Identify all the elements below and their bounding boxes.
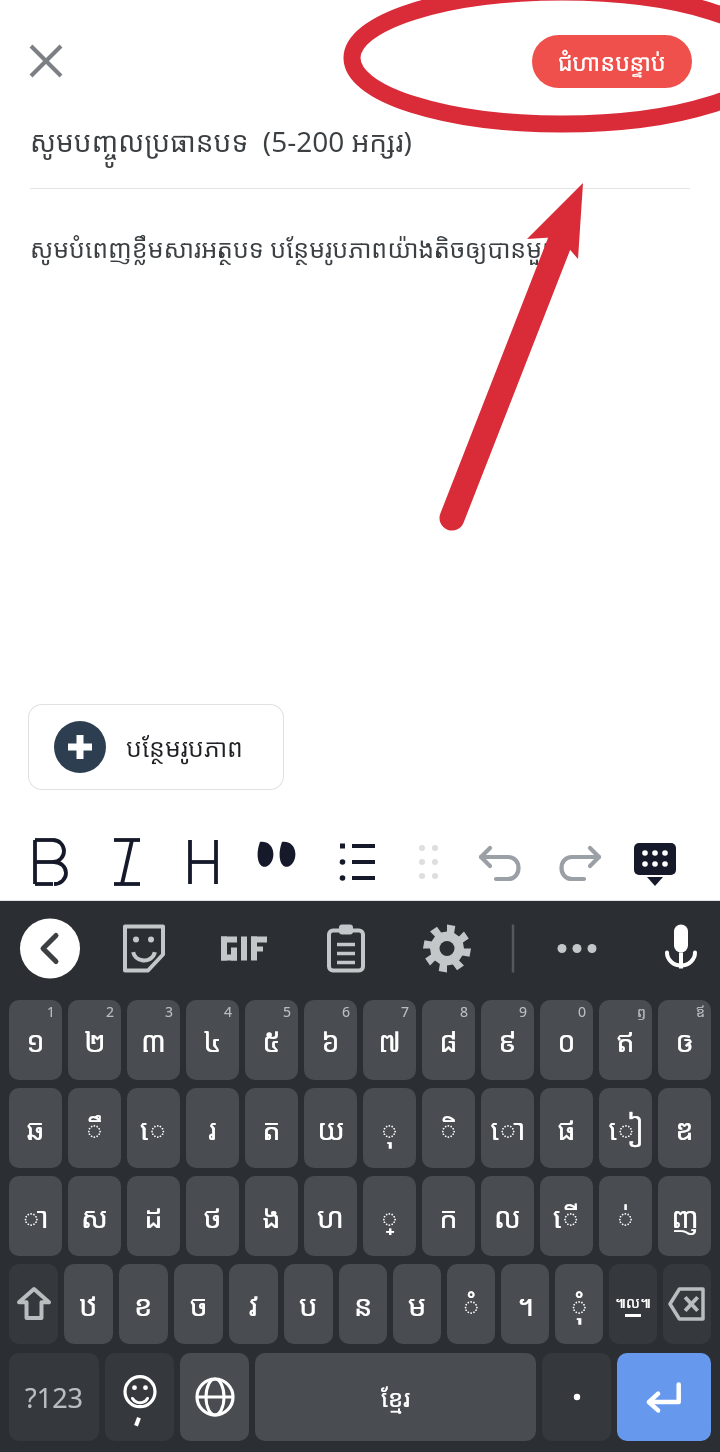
staticText: ឥ (616, 1021, 635, 1060)
button[interactable]: Back (20, 919, 80, 979)
button[interactable]: ត (245, 1088, 298, 1168)
button[interactable]: ុ (363, 1088, 416, 1168)
button[interactable]: Quote (251, 832, 311, 892)
button[interactable]: ផ (540, 1088, 593, 1168)
button[interactable]: បន្ថែមរូបភាព (28, 704, 284, 790)
staticText: 1 (47, 1002, 56, 1021)
button[interactable]: ៣ (127, 1000, 180, 1080)
button[interactable]: Emoji (105, 1353, 174, 1441)
button[interactable]: ់ (599, 1176, 652, 1256)
staticText: ្ (380, 1197, 399, 1236)
button[interactable]: Reorder (398, 832, 458, 892)
button[interactable]: ៧ (363, 1000, 416, 1080)
button[interactable]: Change language (180, 1353, 249, 1441)
button[interactable]: ?123 (9, 1353, 99, 1441)
button[interactable]: ្ (363, 1176, 416, 1256)
button[interactable]: GIF (215, 919, 275, 979)
staticText: ខ (134, 1285, 153, 1324)
button[interactable]: ឥ (599, 1000, 652, 1080)
button[interactable]: ុំ (555, 1264, 603, 1344)
button[interactable]: Hide keyboard (625, 832, 685, 892)
button[interactable]: ឹ (68, 1088, 121, 1168)
button[interactable]: Backspace (663, 1264, 711, 1344)
staticText: ។ (517, 1285, 534, 1324)
button[interactable]: េ (127, 1088, 180, 1168)
button[interactable]: Heading (173, 832, 233, 892)
button[interactable]: ដ (127, 1176, 180, 1256)
button[interactable]: ស (68, 1176, 121, 1256)
button[interactable]: ឌ (658, 1088, 711, 1168)
button[interactable]: ឲ (658, 1000, 711, 1080)
staticText: ៩ (498, 1021, 517, 1060)
button[interactable]: More options (547, 919, 607, 979)
button[interactable]: ឆ (9, 1088, 62, 1168)
button[interactable]: Italic (97, 832, 157, 892)
button[interactable]: ំ (447, 1264, 495, 1344)
button[interactable]: Settings (417, 919, 477, 979)
button[interactable]: ន (339, 1264, 387, 1344)
button[interactable]: Voice input (651, 919, 711, 979)
button[interactable]: ២ (68, 1000, 121, 1080)
staticText: 9 (519, 1002, 528, 1021)
staticText: ា (22, 1197, 49, 1236)
staticText: ម (408, 1285, 427, 1324)
staticText: ៕ល៕ (615, 1292, 651, 1312)
button[interactable]: ើ (540, 1176, 593, 1256)
button[interactable]: ញ (658, 1176, 711, 1256)
button[interactable]: Shift (9, 1264, 58, 1344)
button[interactable]: ៀ (599, 1088, 652, 1168)
button[interactable]: ៩ (481, 1000, 534, 1080)
staticText: ល (494, 1197, 521, 1236)
staticText: 4 (224, 1002, 233, 1021)
button[interactable]: ជំហានបន្ទាប់ (532, 35, 692, 88)
button[interactable]: ហ (304, 1176, 357, 1256)
button[interactable]: Close (14, 29, 78, 93)
staticText: វ (249, 1285, 259, 1324)
button[interactable]: ា (9, 1176, 62, 1256)
button[interactable]: Bulleted list (327, 832, 387, 892)
button[interactable]: ល (481, 1176, 534, 1256)
staticText: ឆ (26, 1109, 45, 1148)
button[interactable]: ង (245, 1176, 298, 1256)
staticText: ៦ (321, 1021, 340, 1060)
button[interactable]: យ (304, 1088, 357, 1168)
staticText: ប (299, 1285, 318, 1324)
button[interactable]: Stickers (114, 919, 174, 979)
staticText: ៥ (262, 1021, 281, 1060)
button[interactable]: ខ (119, 1264, 168, 1344)
button[interactable] (542, 1353, 611, 1441)
button[interactable]: ៤ (186, 1000, 239, 1080)
button[interactable]: ៨ (422, 1000, 475, 1080)
button[interactable]: ប (284, 1264, 333, 1344)
button[interactable]: ៦ (304, 1000, 357, 1080)
staticText: ហ (317, 1197, 344, 1236)
staticText: ៤ (203, 1021, 222, 1060)
button[interactable]: ោ (481, 1088, 534, 1168)
button[interactable]: ១ (9, 1000, 62, 1080)
staticText: ៣ (141, 1021, 166, 1060)
button[interactable]: Enter (617, 1353, 711, 1441)
button[interactable]: ច (174, 1264, 223, 1344)
button[interactable]: រ (186, 1088, 239, 1168)
button[interactable]: ៥ (245, 1000, 298, 1080)
button[interactable]: ០ (540, 1000, 593, 1080)
button[interactable]: Bold (20, 832, 80, 892)
button[interactable]: Redo (548, 832, 608, 892)
button[interactable]: ។ (501, 1264, 549, 1344)
staticText: ១ (26, 1021, 45, 1060)
button[interactable]: ិ (422, 1088, 475, 1168)
button[interactable]: ថ (186, 1176, 239, 1256)
staticText: ច (190, 1285, 208, 1324)
staticText: ឋ (79, 1285, 98, 1324)
button[interactable]: ខ្មែរ (255, 1353, 536, 1441)
button[interactable]: ៕ល៕ (609, 1264, 657, 1344)
button[interactable]: Undo (472, 832, 532, 892)
button[interactable]: Clipboard (316, 919, 376, 979)
staticText: ឪ (696, 1002, 705, 1021)
button[interactable]: ក (422, 1176, 475, 1256)
button[interactable]: ម (393, 1264, 441, 1344)
staticText: ឹ (85, 1109, 104, 1148)
staticText: យ (317, 1109, 345, 1148)
button[interactable]: វ (229, 1264, 278, 1344)
button[interactable]: ឋ (64, 1264, 113, 1344)
